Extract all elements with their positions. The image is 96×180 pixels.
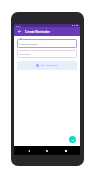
button[interactable]: Tue, 14 Jan 09:00: [17, 61, 77, 70]
button[interactable]: Recent apps: [62, 147, 70, 155]
staticText: 9:41: [16, 24, 21, 27]
staticText: Description: [19, 53, 31, 56]
button[interactable]: Back: [25, 147, 33, 155]
button[interactable]: Submit Assignment: [17, 39, 77, 48]
button[interactable]: Save reminder: [69, 136, 76, 143]
staticText: Submit Assignment: [19, 43, 39, 46]
button[interactable]: Navigate up: [14, 27, 25, 36]
staticText: Tue, 14 Jan 09:00: [41, 64, 58, 67]
staticText: Create Reminder: [25, 30, 50, 34]
button[interactable]: Home: [43, 147, 51, 155]
button[interactable]: Description: [17, 50, 77, 58]
